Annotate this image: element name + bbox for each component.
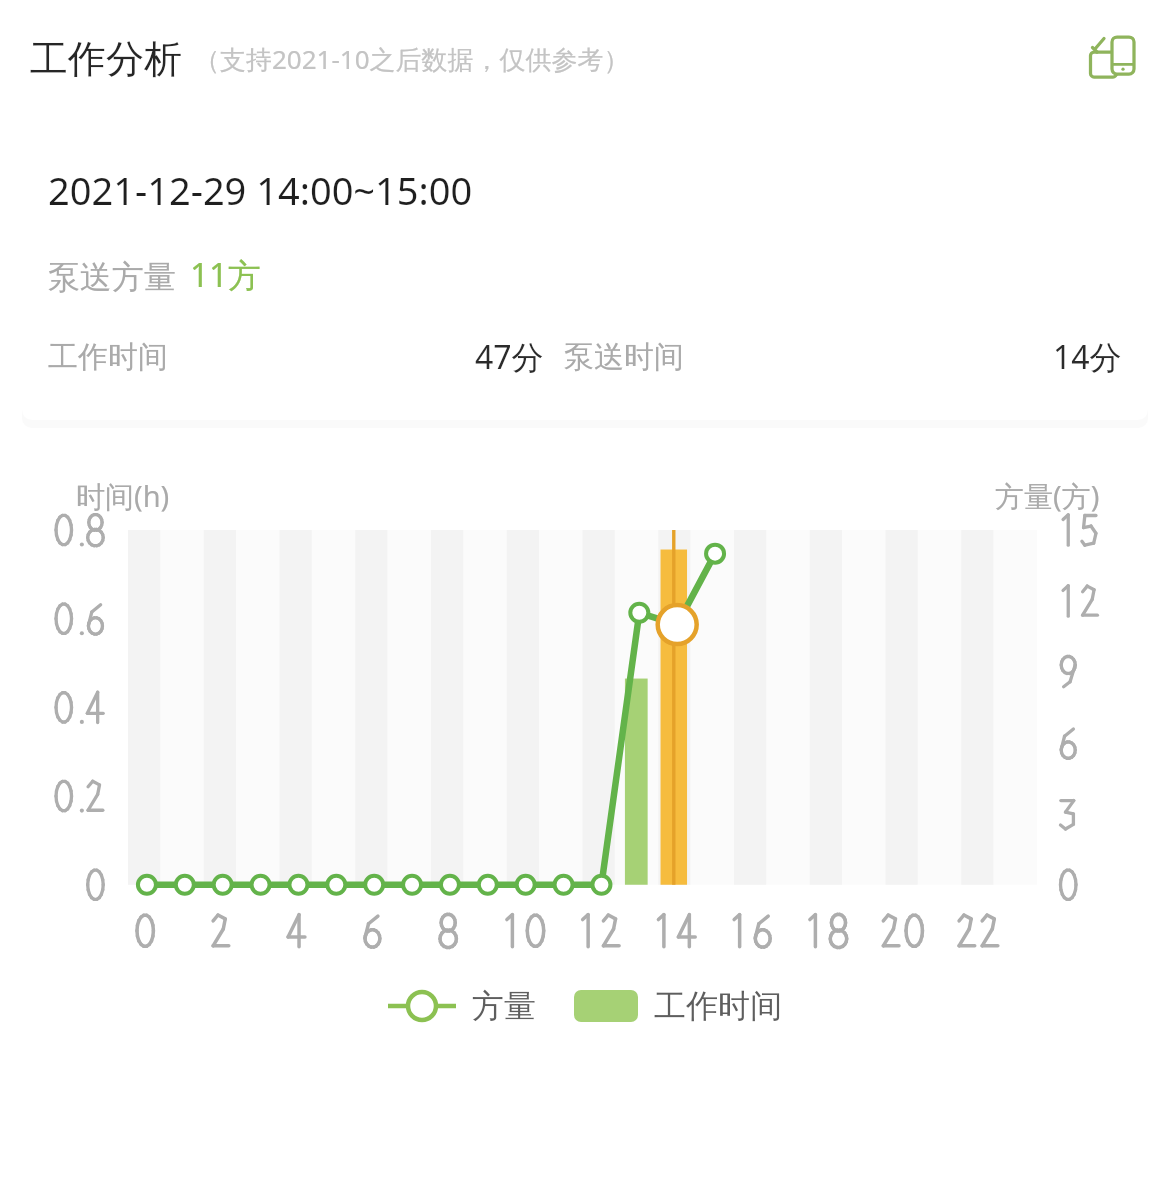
staticText: 工作时间 (654, 986, 782, 1026)
staticText: 14分 (1053, 335, 1122, 379)
button[interactable]: 切换设备 (1080, 26, 1146, 92)
staticText: 11方 (190, 252, 261, 297)
button[interactable]: 方量 (388, 986, 536, 1026)
staticText: 47分 (475, 335, 544, 379)
staticText: 方量(方) (995, 476, 1100, 516)
button[interactable]: 工作时间 (574, 986, 782, 1026)
staticText: （支持2021-10之后数据，仅供参考） (194, 41, 630, 77)
staticText: 工作时间 (48, 338, 168, 376)
staticText: 方量 (472, 986, 536, 1026)
staticText: 时间(h) (76, 476, 170, 516)
staticText: 2021-12-29 14:00~15:00 (48, 164, 473, 216)
staticText: 工作分析 (30, 35, 182, 83)
button[interactable]: 2021-12-29 14:00~15:00 (22, 118, 1148, 420)
staticText: 泵送方量 (48, 257, 176, 297)
staticText: 泵送时间 (564, 338, 684, 376)
